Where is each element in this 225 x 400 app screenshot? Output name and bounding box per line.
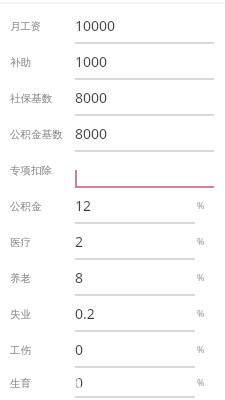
button[interactable]: 补助 xyxy=(0,46,225,82)
staticText: 0.2 xyxy=(75,304,95,323)
staticText: 医疗 xyxy=(10,236,31,249)
staticText: % xyxy=(197,343,205,355)
staticText: % xyxy=(197,199,205,211)
staticText: 8000 xyxy=(75,124,108,143)
staticText: % xyxy=(197,307,205,319)
staticText: 1000 xyxy=(75,52,108,71)
staticText: 补助 xyxy=(10,56,31,69)
button[interactable]: 工伤 xyxy=(0,334,225,370)
staticText: % xyxy=(197,235,205,247)
staticText: 失业 xyxy=(10,308,31,321)
staticText: 养老 xyxy=(10,272,31,285)
button[interactable]: 社保基数 xyxy=(0,82,225,118)
staticText: 月工资 xyxy=(10,20,42,33)
button[interactable]: 月工资 xyxy=(0,10,225,46)
button[interactable]: 公积金 xyxy=(0,190,225,226)
staticText: 公积金 xyxy=(10,200,42,213)
button[interactable]: 失业 xyxy=(0,298,225,334)
button[interactable]: 公积金基数 xyxy=(0,118,225,154)
button[interactable]: 专项扣除 xyxy=(0,154,225,190)
staticText: 生育 xyxy=(10,377,31,390)
staticText: 工伤 xyxy=(10,344,31,357)
staticText: 0 xyxy=(75,373,84,392)
button[interactable]: 生育 xyxy=(0,370,225,400)
staticText: 12 xyxy=(75,196,92,215)
staticText: 10000 xyxy=(75,16,116,35)
staticText: 社保基数 xyxy=(10,92,52,105)
staticText: 专项扣除 xyxy=(10,164,52,177)
staticText: 公积金基数 xyxy=(10,128,63,141)
staticText: 飞下载 · BYEZXY.COM xyxy=(30,368,196,391)
staticText: 2 xyxy=(75,232,84,251)
staticText: 0 xyxy=(75,340,84,359)
staticText: 8000 xyxy=(75,88,108,107)
button[interactable]: 养老 xyxy=(0,262,225,298)
button[interactable]: 医疗 xyxy=(0,226,225,262)
staticText: % xyxy=(197,376,205,388)
staticText: 8 xyxy=(75,268,84,287)
staticText: % xyxy=(197,271,205,283)
